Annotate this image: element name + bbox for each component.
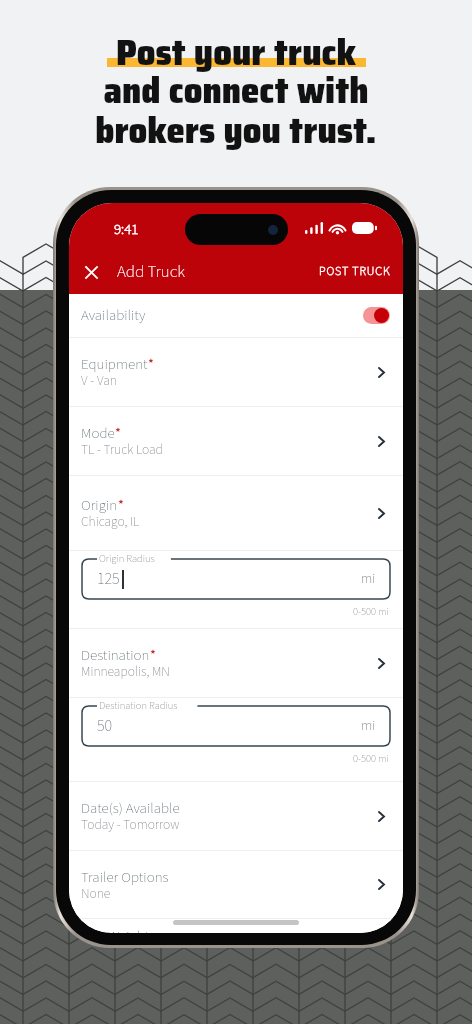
- button[interactable]: POST TRUCK: [305, 252, 403, 291]
- button[interactable]: Mode: [69, 407, 403, 475]
- button[interactable]: Destination: [69, 629, 403, 697]
- staticText: 9:41: [114, 219, 139, 240]
- staticText: Destination: [81, 645, 150, 666]
- staticText: Minneapolis, MN: [81, 662, 170, 681]
- staticText: Date(s) Available: [81, 798, 180, 819]
- staticText: TL - Truck Load: [81, 440, 163, 459]
- staticText: Chicago, IL: [81, 512, 140, 531]
- button[interactable]: Equipment: [69, 338, 403, 406]
- staticText: POST TRUCK: [319, 263, 391, 280]
- button[interactable]: Close: [73, 254, 109, 290]
- staticText: *: [150, 645, 156, 666]
- staticText: *: [148, 354, 154, 375]
- button[interactable]: Trailer Options: [69, 851, 403, 918]
- staticText: Mode: [81, 423, 115, 444]
- staticText: Availability: [81, 305, 146, 326]
- staticText: None: [81, 884, 111, 903]
- button[interactable]: Availability: [69, 294, 403, 337]
- staticText: mi: [361, 569, 376, 589]
- staticText: Post your truck: [116, 23, 356, 81]
- staticText: and connect with: [103, 61, 369, 119]
- staticText: *: [118, 495, 124, 516]
- button[interactable]: Origin: [69, 476, 403, 550]
- staticText: 0-500 mi: [353, 751, 389, 766]
- staticText: Today - Tomorrow: [81, 815, 180, 834]
- staticText: Max Weight: [81, 926, 150, 933]
- staticText: V - Van: [81, 371, 117, 390]
- staticText: Origin: [81, 495, 118, 516]
- staticText: Add Truck: [117, 260, 185, 284]
- staticText: 0-500 mi: [353, 604, 389, 619]
- staticText: Destination Radius: [99, 698, 178, 713]
- staticText: mi: [361, 716, 376, 736]
- staticText: brokers you trust.: [95, 101, 377, 159]
- staticText: 50: [97, 715, 113, 738]
- staticText: Trailer Options: [81, 867, 169, 888]
- staticText: Equipment: [81, 354, 148, 375]
- staticText: *: [115, 423, 121, 444]
- staticText: Origin Radius: [99, 551, 155, 566]
- button[interactable]: Date(s) Available: [69, 782, 403, 850]
- staticText: 125: [97, 568, 120, 591]
